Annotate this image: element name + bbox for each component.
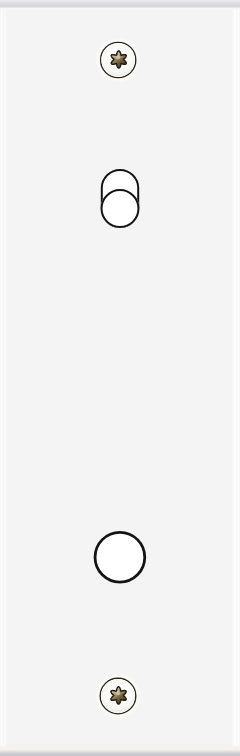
button[interactable]: Toggle switch <box>101 169 139 228</box>
button[interactable]: Bottom fixing screw <box>100 678 137 715</box>
button[interactable]: Round button <box>94 531 146 583</box>
button[interactable]: Top fixing screw <box>100 42 137 79</box>
